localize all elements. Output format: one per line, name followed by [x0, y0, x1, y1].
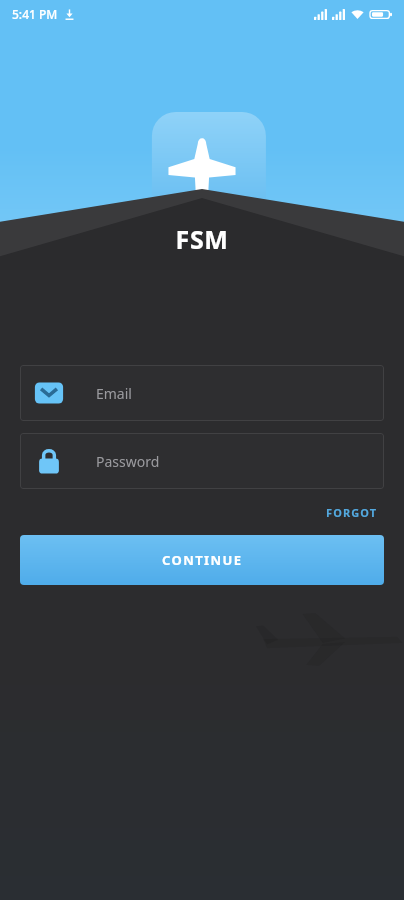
- staticText: Email: [96, 384, 132, 403]
- button[interactable]: FORGOT: [320, 501, 384, 524]
- staticText: 5:41 PM: [12, 6, 58, 22]
- staticText: CONTINUE: [162, 551, 243, 569]
- staticText: Password: [96, 452, 160, 471]
- staticText: FSM: [0, 222, 404, 256]
- staticText: FORGOT: [326, 505, 378, 520]
- other: Email: [34, 378, 64, 408]
- other: Password: [34, 446, 64, 476]
- button[interactable]: Password: [20, 433, 384, 489]
- button[interactable]: Email: [20, 365, 384, 421]
- button[interactable]: CONTINUE: [20, 535, 384, 585]
